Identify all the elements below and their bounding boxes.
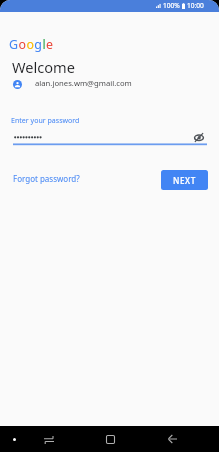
button[interactable]: Forgot password?	[10, 168, 83, 189]
staticText: 10:00	[187, 1, 204, 10]
staticText: Enter your password	[11, 115, 80, 125]
button[interactable]: Switch keyboard	[39, 430, 59, 450]
button[interactable]: Show password	[190, 128, 208, 146]
staticText: Forgot password?	[13, 173, 80, 184]
button[interactable]: Home	[100, 429, 120, 449]
staticText: NEXT	[173, 175, 196, 186]
button[interactable]: Back	[162, 429, 182, 449]
staticText: Google	[9, 36, 54, 53]
staticText: alan.jones.wm@gmail.com	[35, 78, 132, 88]
staticText: 100%	[163, 1, 180, 10]
button[interactable]: NEXT	[161, 170, 208, 190]
staticText: Welcome	[12, 57, 75, 77]
